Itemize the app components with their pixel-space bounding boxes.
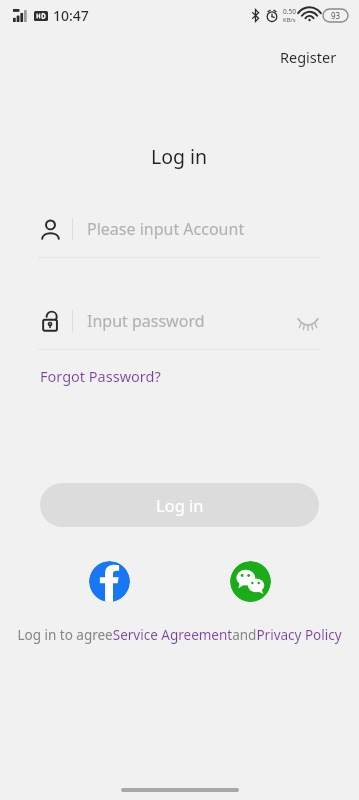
button[interactable]: Show password (295, 308, 321, 334)
button[interactable]: Register (272, 42, 345, 72)
staticText: KB/s (283, 16, 296, 24)
button[interactable]: Please input Account (38, 212, 321, 246)
button[interactable]: Log in with WeChat (230, 561, 271, 602)
staticText: 0.50 (283, 7, 296, 16)
button[interactable]: Log in (40, 483, 319, 527)
staticText: Please input Account (87, 218, 245, 240)
staticText: 93 (331, 10, 341, 21)
staticText: Register (280, 47, 337, 67)
staticText: Input password (87, 310, 205, 332)
staticText: 10:47 (53, 6, 89, 25)
button[interactable]: Input password (38, 304, 321, 338)
staticText: Log in to agreeService AgreementandPriva… (8, 626, 351, 644)
staticText: Forgot Password? (40, 366, 161, 386)
staticText: Log in (151, 143, 208, 170)
button[interactable]: Log in with Facebook (89, 561, 130, 602)
staticText: Log in (156, 494, 204, 516)
button[interactable]: Forgot Password? (34, 361, 167, 391)
